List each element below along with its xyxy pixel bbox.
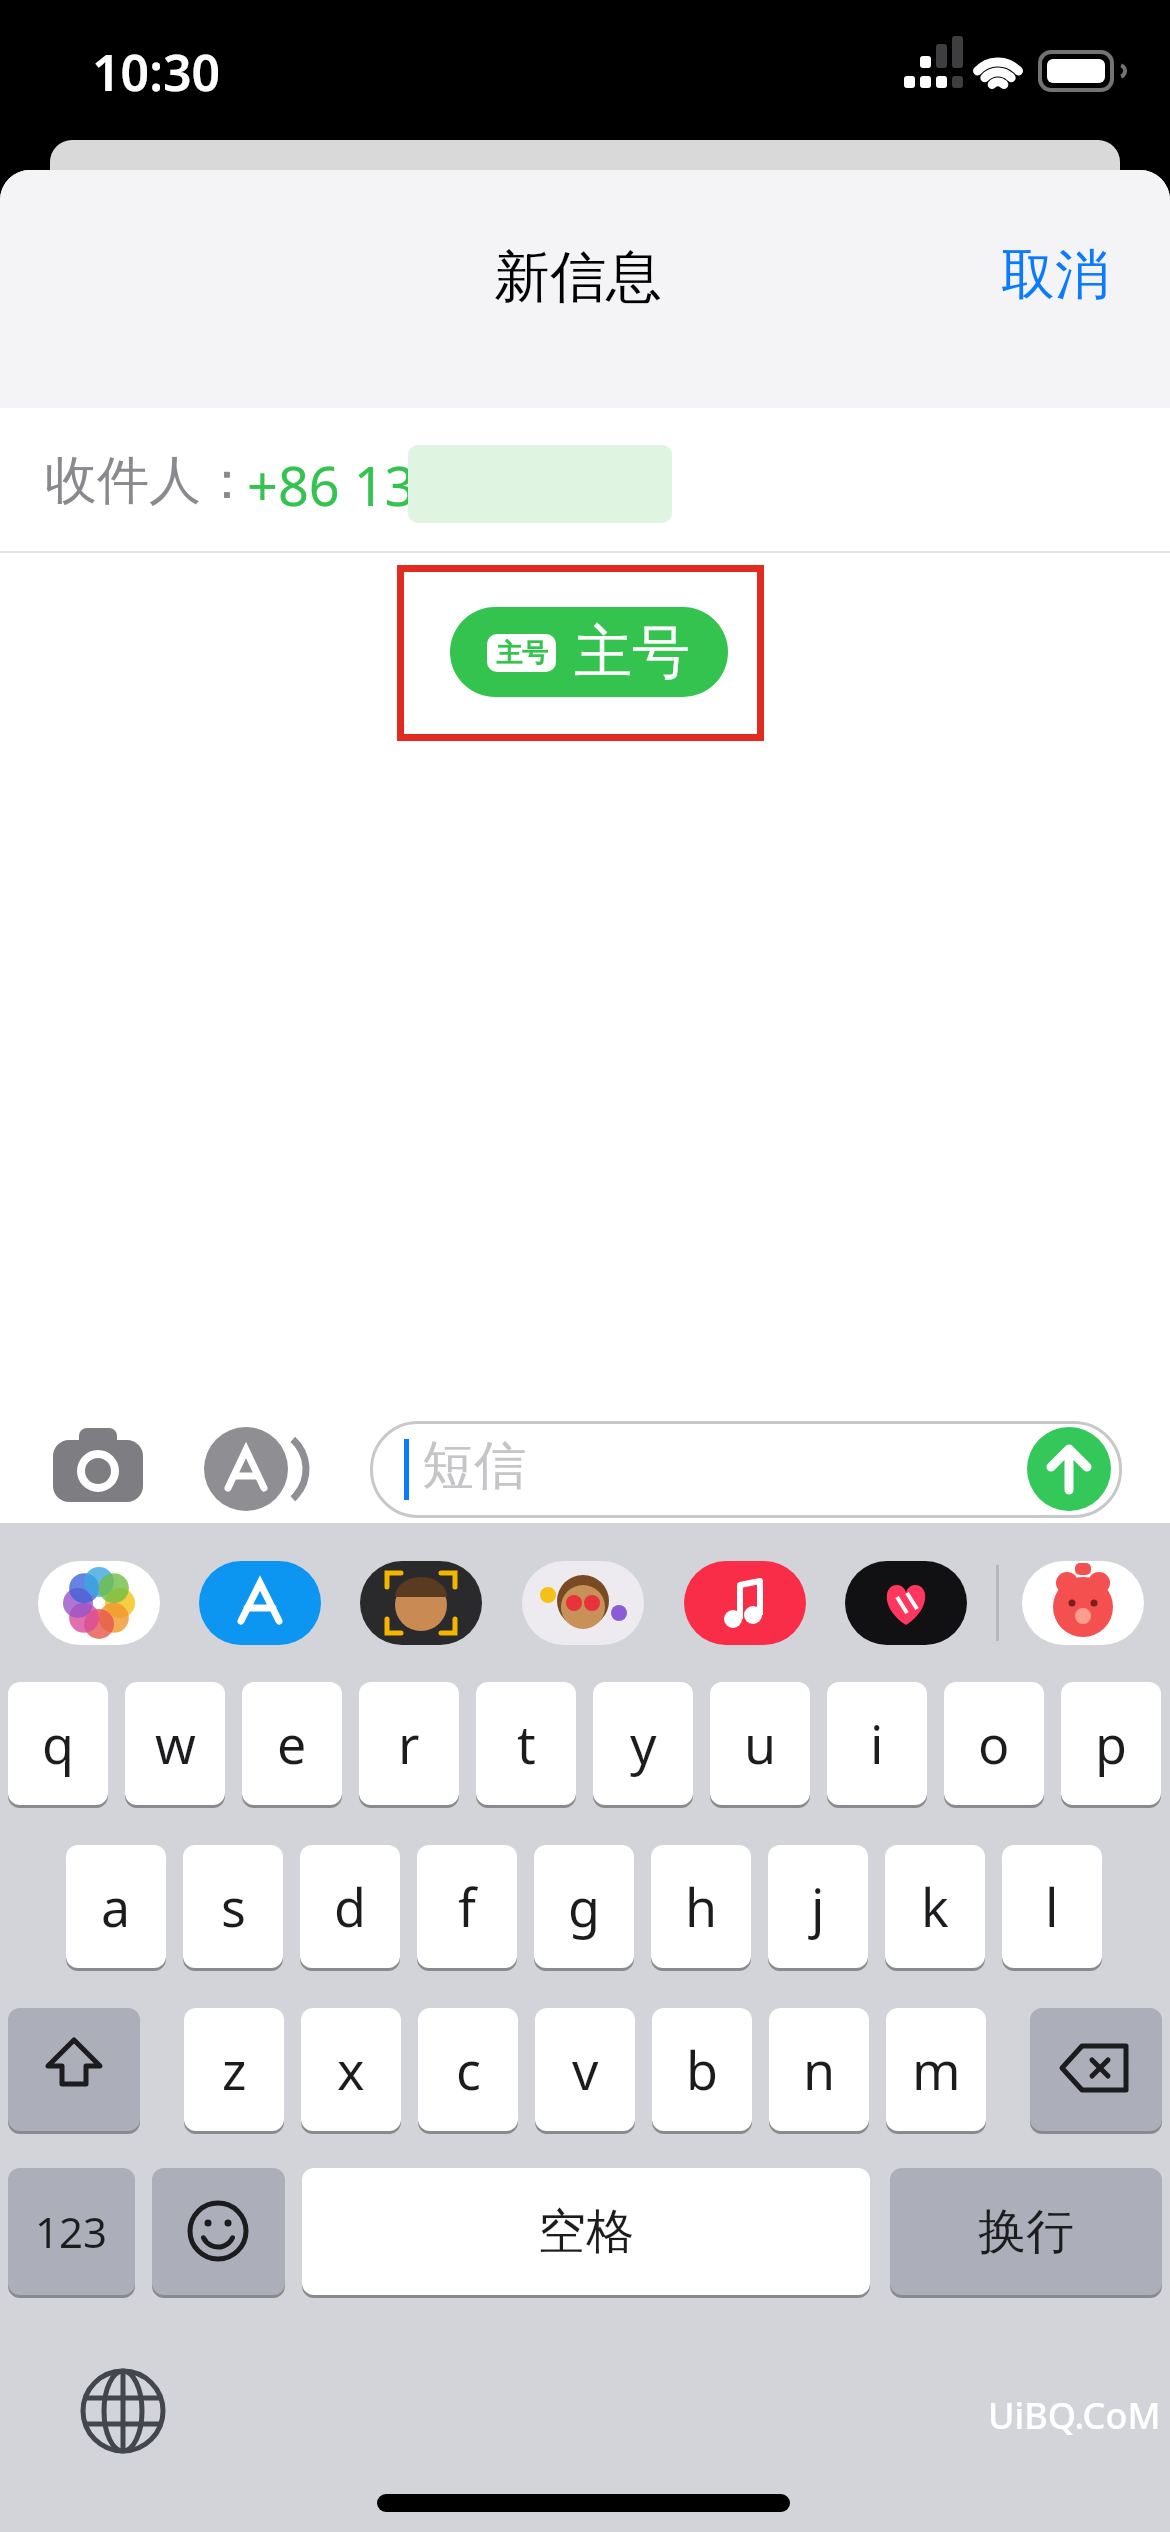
button[interactable]: w [125, 1682, 225, 1805]
button[interactable]: b [652, 2008, 752, 2131]
staticText: q [42, 1708, 74, 1779]
staticText: w [155, 1708, 196, 1779]
button[interactable] [1022, 1561, 1144, 1645]
button[interactable] [204, 1426, 314, 1512]
staticText: h [685, 1871, 718, 1942]
staticText: i [870, 1708, 884, 1779]
staticText: l [1045, 1871, 1059, 1942]
button[interactable] [522, 1561, 644, 1645]
button[interactable]: v [535, 2008, 635, 2131]
staticText: 主号 [574, 616, 690, 689]
button[interactable]: s [183, 1845, 283, 1968]
staticText: 空格 [538, 2202, 634, 2262]
staticText: x [337, 2034, 365, 2105]
staticText: n [803, 2034, 836, 2105]
staticText: 短信 [422, 1433, 526, 1499]
staticText: 取消 [1001, 241, 1109, 309]
button[interactable] [78, 2366, 168, 2456]
staticText: o [978, 1708, 1010, 1779]
button[interactable]: j [768, 1845, 868, 1968]
staticText: a [101, 1871, 131, 1942]
button[interactable]: z [184, 2008, 284, 2131]
staticText: v [572, 2034, 599, 2105]
staticText: f [458, 1871, 476, 1942]
button[interactable]: f [417, 1845, 517, 1968]
button[interactable] [684, 1561, 806, 1645]
staticText: k [921, 1871, 949, 1942]
button[interactable]: a [66, 1845, 166, 1968]
button[interactable]: 空格 [302, 2168, 870, 2295]
button[interactable]: n [769, 2008, 869, 2131]
staticText: c [456, 2034, 481, 2105]
staticText: s [221, 1871, 246, 1942]
staticText: 10:30 [92, 38, 221, 106]
staticText: 新信息 [494, 242, 662, 313]
button[interactable]: o [944, 1682, 1044, 1805]
button[interactable]: d [300, 1845, 400, 1968]
button[interactable]: l [1002, 1845, 1102, 1968]
button[interactable]: 短信 [370, 1421, 1122, 1518]
staticText: 主号 [496, 637, 548, 670]
button[interactable]: h [651, 1845, 751, 1968]
button[interactable]: i [827, 1682, 927, 1805]
button[interactable] [199, 1561, 321, 1645]
button[interactable]: 取消 [975, 230, 1135, 320]
staticText: 收件人： [45, 448, 253, 514]
button[interactable]: 主号 [450, 607, 728, 697]
button[interactable]: e [242, 1682, 342, 1805]
button[interactable]: u [710, 1682, 810, 1805]
button[interactable]: m [886, 2008, 986, 2131]
button[interactable]: r [359, 1682, 459, 1805]
button[interactable]: t [476, 1682, 576, 1805]
button[interactable]: x [301, 2008, 401, 2131]
button[interactable]: q [8, 1682, 108, 1805]
button[interactable] [152, 2168, 285, 2295]
staticText: b [686, 2034, 718, 2105]
staticText: UiBQ.CoM [988, 2391, 1161, 2440]
button[interactable]: 收件人： [0, 408, 1170, 551]
button[interactable]: y [593, 1682, 693, 1805]
staticText: 123 [35, 2203, 108, 2260]
staticText: r [398, 1708, 420, 1779]
button[interactable]: g [534, 1845, 634, 1968]
staticText: d [334, 1871, 366, 1942]
staticText: p [1095, 1708, 1127, 1779]
button[interactable]: k [885, 1845, 985, 1968]
button[interactable] [845, 1561, 967, 1645]
button[interactable] [8, 2008, 140, 2131]
staticText: u [744, 1708, 777, 1779]
button[interactable] [1030, 2008, 1162, 2131]
staticText: 换行 [978, 2202, 1074, 2262]
staticText: e [277, 1708, 307, 1779]
staticText: y [630, 1708, 657, 1779]
staticText: +86 133 [247, 448, 447, 522]
staticText: t [517, 1708, 536, 1779]
button[interactable]: 123 [8, 2168, 135, 2295]
button[interactable]: 换行 [890, 2168, 1162, 2295]
button[interactable] [1027, 1427, 1111, 1511]
button[interactable] [53, 1424, 145, 1504]
staticText: g [568, 1871, 600, 1942]
button[interactable]: c [418, 2008, 518, 2131]
staticText: m [912, 2034, 961, 2105]
button[interactable] [360, 1561, 482, 1645]
button[interactable] [38, 1561, 160, 1645]
staticText: j [811, 1871, 825, 1942]
button[interactable]: p [1061, 1682, 1161, 1805]
staticText: z [222, 2034, 247, 2105]
